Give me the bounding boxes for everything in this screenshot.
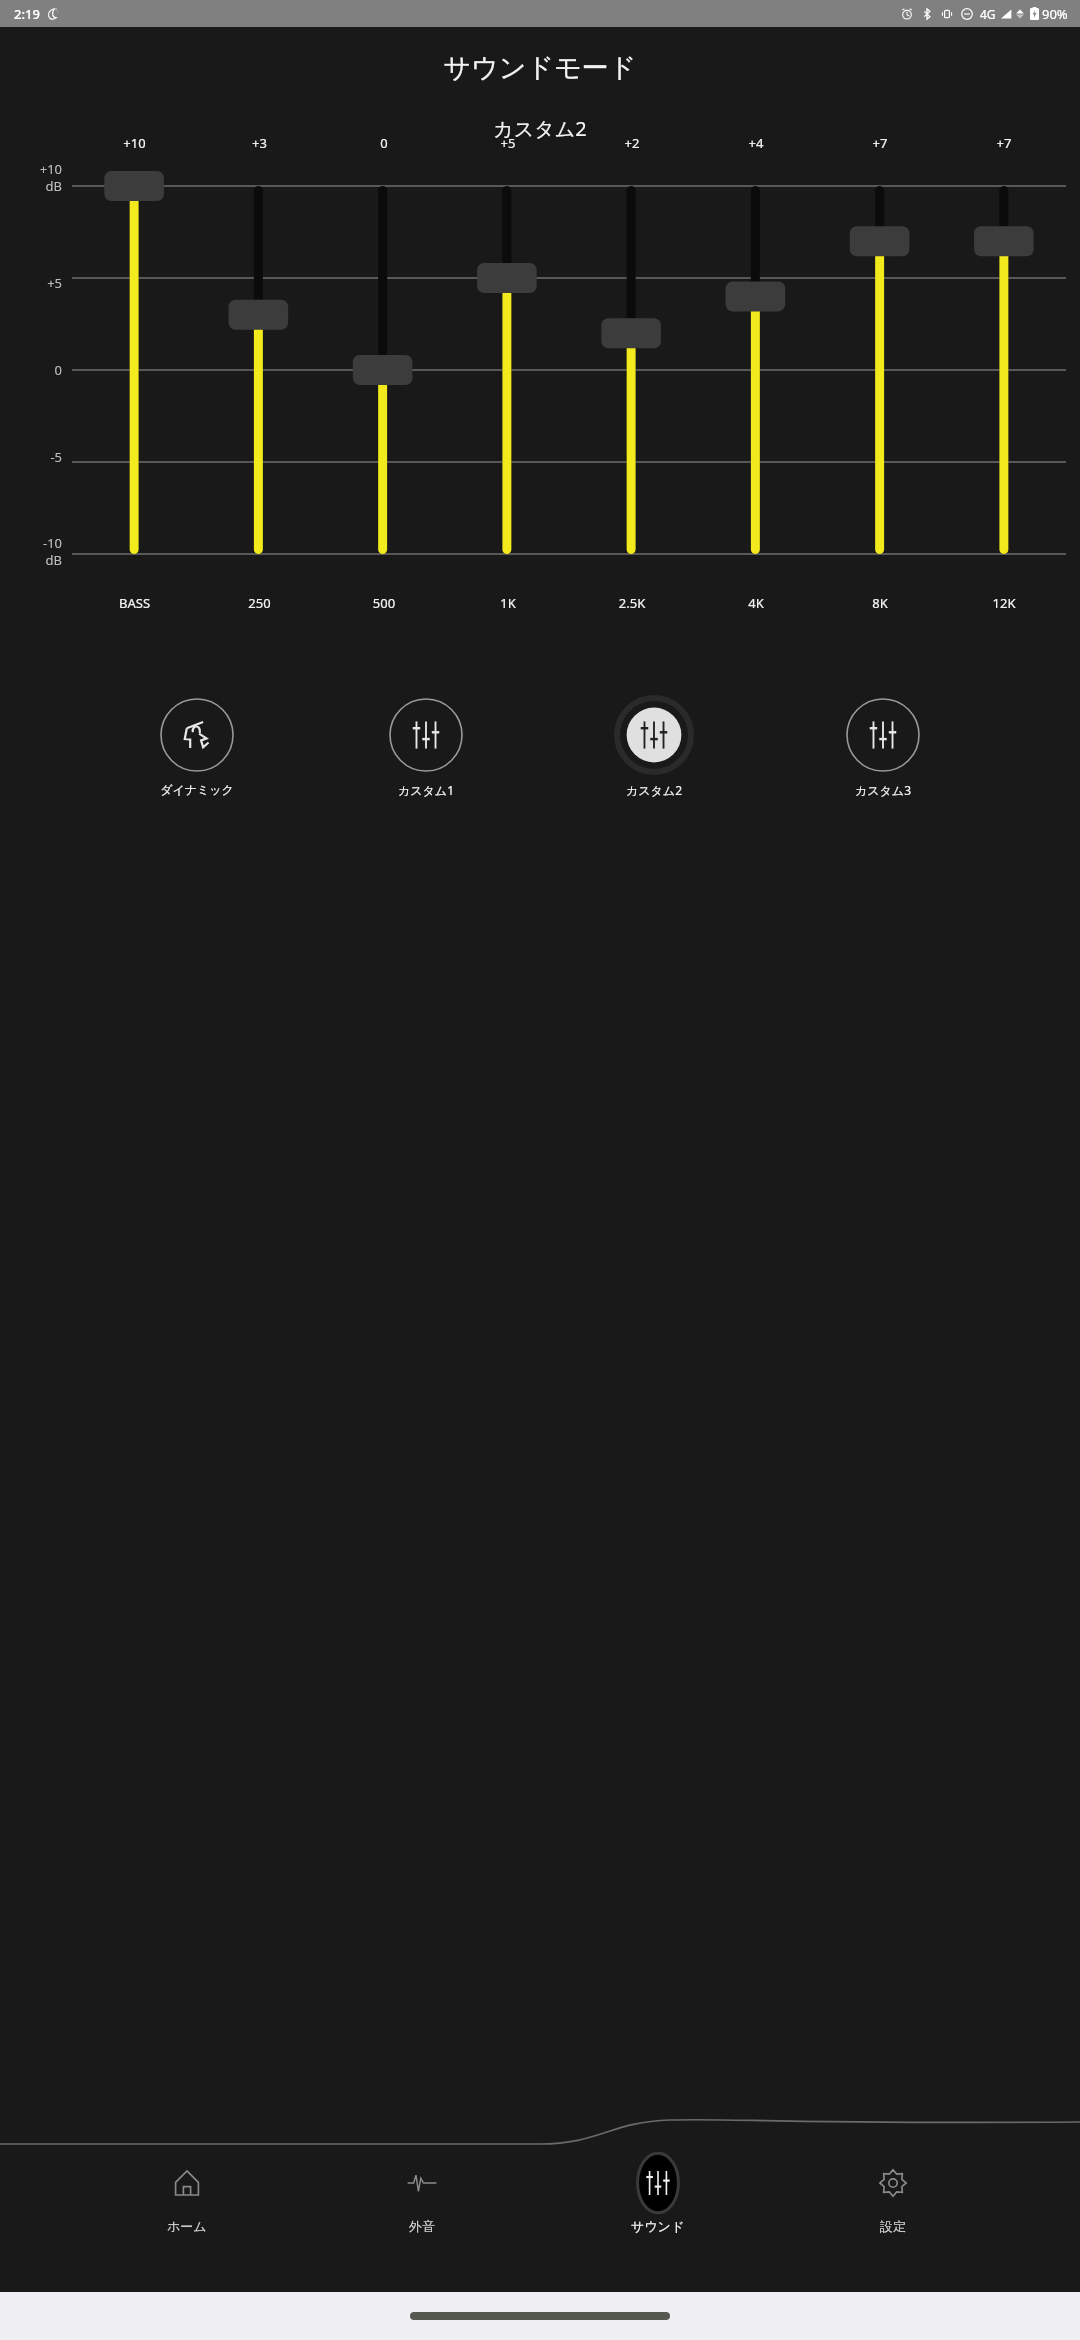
- staticText: +7: [942, 134, 1066, 152]
- staticText: カスタム1: [398, 782, 454, 798]
- staticText: 2:19: [14, 5, 40, 23]
- staticText: 250: [197, 594, 322, 612]
- staticText: 1K: [446, 594, 570, 612]
- staticText: +10 dB: [39, 160, 62, 195]
- button[interactable]: ホーム: [138, 2148, 236, 2238]
- staticText: BASS: [72, 594, 197, 612]
- staticText: +7: [818, 134, 942, 152]
- staticText: 500: [322, 594, 446, 612]
- staticText: 12K: [942, 594, 1066, 612]
- staticText: +10: [72, 134, 197, 152]
- staticText: 90%: [1042, 5, 1068, 23]
- button[interactable]: サウンド: [609, 2148, 707, 2238]
- staticText: カスタム3: [855, 782, 911, 798]
- staticText: -5: [50, 448, 62, 466]
- button[interactable]: 外音: [373, 2148, 471, 2238]
- staticText: 4K: [694, 594, 818, 612]
- staticText: -10 dB: [42, 534, 62, 569]
- button[interactable]: 設定: [844, 2148, 942, 2238]
- staticText: 設定: [880, 2218, 906, 2234]
- button[interactable]: カスタム3: [842, 694, 924, 802]
- button[interactable]: ダイナミック: [156, 694, 238, 801]
- staticText: +5: [47, 274, 62, 292]
- staticText: +5: [446, 134, 570, 152]
- staticText: ダイナミック: [160, 782, 234, 797]
- staticText: 8K: [818, 594, 942, 612]
- staticText: 2.5K: [570, 594, 694, 612]
- staticText: 0: [322, 134, 446, 152]
- staticText: ホーム: [167, 2218, 207, 2234]
- staticText: サウンドモード: [0, 51, 1080, 85]
- button[interactable]: カスタム2: [613, 694, 695, 802]
- staticText: カスタム2: [626, 782, 682, 798]
- staticText: サウンド: [631, 2218, 685, 2234]
- staticText: 外音: [409, 2218, 435, 2234]
- staticText: カスタム2: [0, 115, 1080, 142]
- staticText: +2: [570, 134, 694, 152]
- staticText: +4: [694, 134, 818, 152]
- staticText: 4G: [980, 6, 996, 22]
- staticText: +3: [197, 134, 322, 152]
- button[interactable]: カスタム1: [385, 694, 467, 802]
- staticText: 0: [54, 361, 62, 379]
